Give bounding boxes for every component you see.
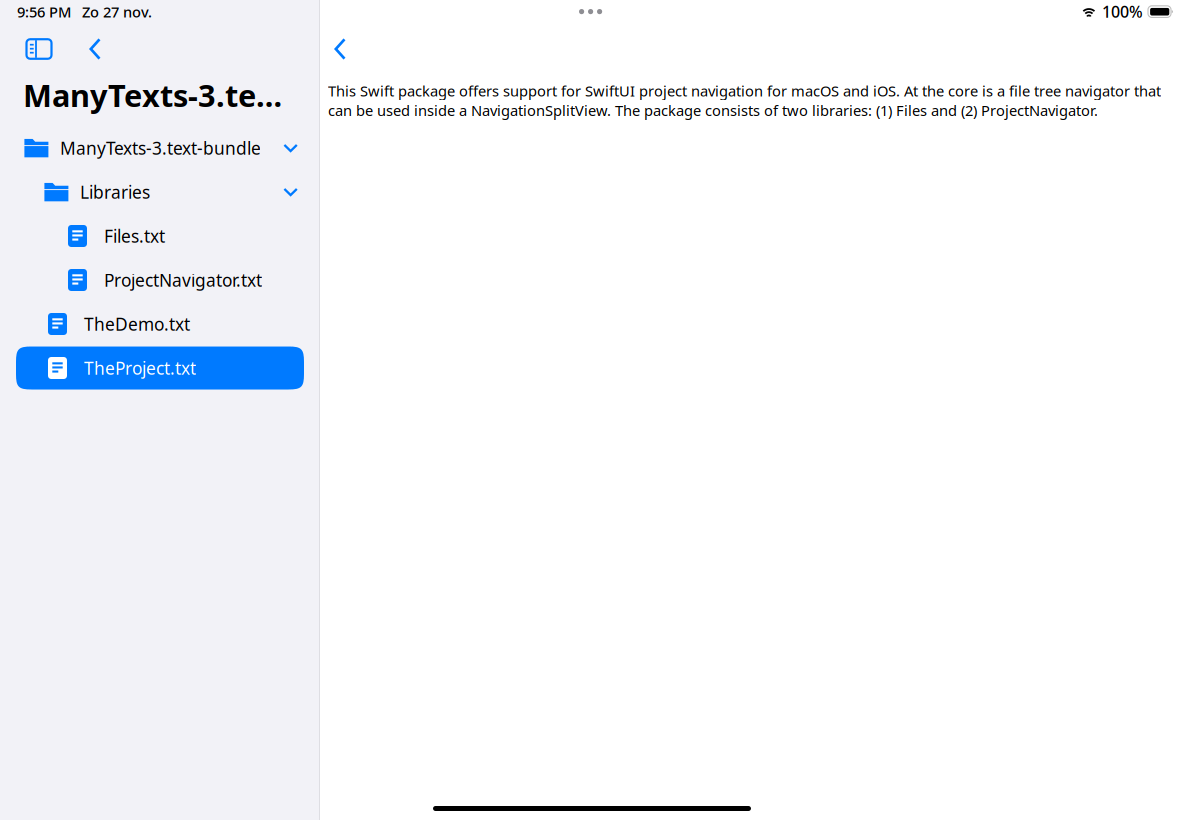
staticText: Libraries (80, 180, 150, 203)
button[interactable]: TheDemo.txt (0, 302, 320, 346)
button[interactable]: Files.txt (0, 214, 320, 258)
button[interactable]: Back (76, 29, 114, 69)
button[interactable]: ManyTexts-3.text-bundle (0, 126, 320, 170)
staticText: 9:56 PM (17, 2, 71, 21)
button[interactable]: TheProject.txt (0, 346, 320, 390)
button[interactable]: Libraries (0, 170, 320, 214)
staticText: ManyTexts-3.te… (23, 75, 282, 115)
staticText: ProjectNavigator.txt (104, 268, 262, 291)
staticText: TheProject.txt (84, 356, 196, 379)
staticText: Zo 27 nov. (82, 2, 152, 21)
staticText: TheDemo.txt (84, 312, 190, 335)
staticText: This Swift package offers support for Sw… (328, 81, 1161, 120)
button[interactable]: ProjectNavigator.txt (0, 258, 320, 302)
staticText: 100% (1102, 1, 1143, 22)
button[interactable]: Multitasking Controls (579, 9, 602, 29)
staticText: ManyTexts-3.text-bundle (60, 136, 261, 159)
staticText: Files.txt (104, 224, 165, 247)
button[interactable]: Toggle Sidebar (17, 29, 61, 69)
button[interactable]: Back (321, 29, 359, 69)
